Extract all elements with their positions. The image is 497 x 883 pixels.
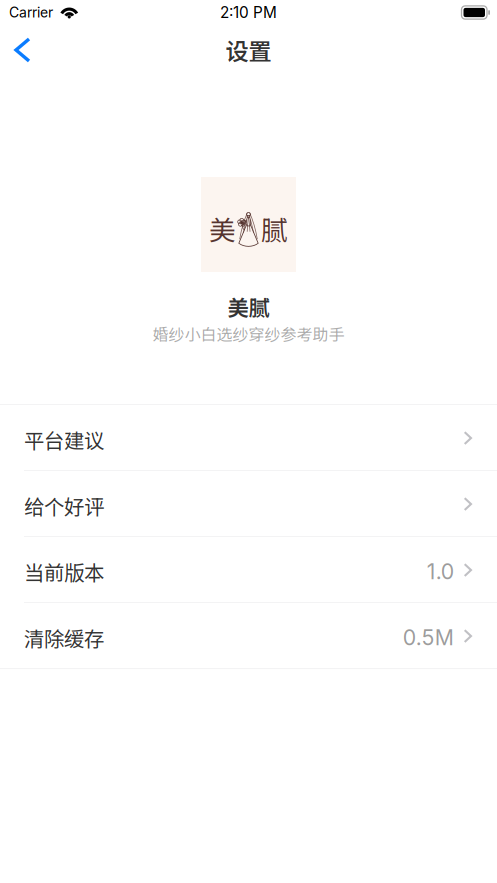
staticText: 腻 bbox=[261, 209, 288, 248]
staticText: 设置 bbox=[225, 33, 271, 67]
staticText: 0.5M bbox=[403, 625, 454, 650]
button[interactable]: 清除缓存 bbox=[0, 603, 497, 668]
button[interactable]: 平台建议 bbox=[0, 405, 497, 470]
staticText: 美 bbox=[209, 209, 236, 248]
button[interactable]: Back bbox=[0, 29, 43, 71]
staticText: 婚纱小白选纱穿纱参考助手 bbox=[152, 322, 344, 345]
staticText: 当前版本 bbox=[24, 557, 104, 586]
staticText: 平台建议 bbox=[24, 425, 104, 454]
staticText: 2:10 PM bbox=[220, 3, 277, 22]
staticText: 清除缓存 bbox=[24, 623, 104, 652]
button[interactable]: 给个好评 bbox=[0, 471, 497, 536]
staticText: 1.0 bbox=[427, 559, 454, 584]
staticText: Carrier bbox=[9, 4, 53, 21]
staticText: 给个好评 bbox=[24, 491, 104, 520]
button[interactable]: 当前版本 bbox=[0, 537, 497, 602]
staticText: 美腻 bbox=[227, 291, 269, 322]
